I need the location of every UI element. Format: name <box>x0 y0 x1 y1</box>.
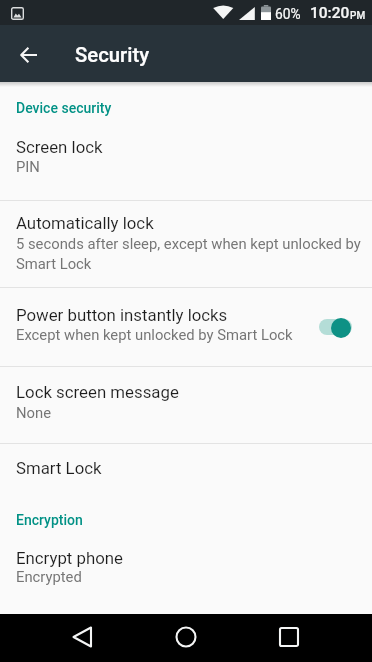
staticText: Automatically lock <box>16 213 154 233</box>
staticText: Security <box>75 43 150 67</box>
staticText: Screen lock <box>16 137 103 157</box>
staticText: Encryption <box>16 512 83 528</box>
button[interactable] <box>331 318 351 338</box>
staticText: Power button instantly locks <box>16 305 228 325</box>
button[interactable]: Lock screen message <box>0 367 372 443</box>
staticText: Except when kept unlocked by Smart Lock <box>16 326 293 343</box>
staticText: Encrypted <box>16 568 82 585</box>
button[interactable]: Power button instantly locks <box>0 288 372 366</box>
staticText: 10:20 <box>310 4 350 22</box>
staticText: Smart Lock <box>16 458 102 478</box>
button[interactable] <box>59 614 107 662</box>
button[interactable] <box>265 614 313 662</box>
button[interactable]: Smart Lock <box>0 444 372 502</box>
button[interactable]: Encrypt phone <box>0 536 372 614</box>
staticText: PIN <box>16 158 40 175</box>
button[interactable] <box>162 614 210 662</box>
button[interactable]: Screen lock <box>0 118 372 200</box>
staticText: Smart Lock <box>16 255 92 272</box>
staticText: 60% <box>275 6 301 22</box>
staticText: PM <box>350 10 366 22</box>
staticText: None <box>16 404 52 421</box>
staticText: Encrypt phone <box>16 548 123 568</box>
button[interactable]: Automatically lock <box>0 201 372 287</box>
staticText: Lock screen message <box>16 382 179 402</box>
staticText: Device security <box>16 100 112 116</box>
staticText: 5 seconds after sleep, except when kept … <box>16 235 361 252</box>
button[interactable] <box>4 30 52 78</box>
